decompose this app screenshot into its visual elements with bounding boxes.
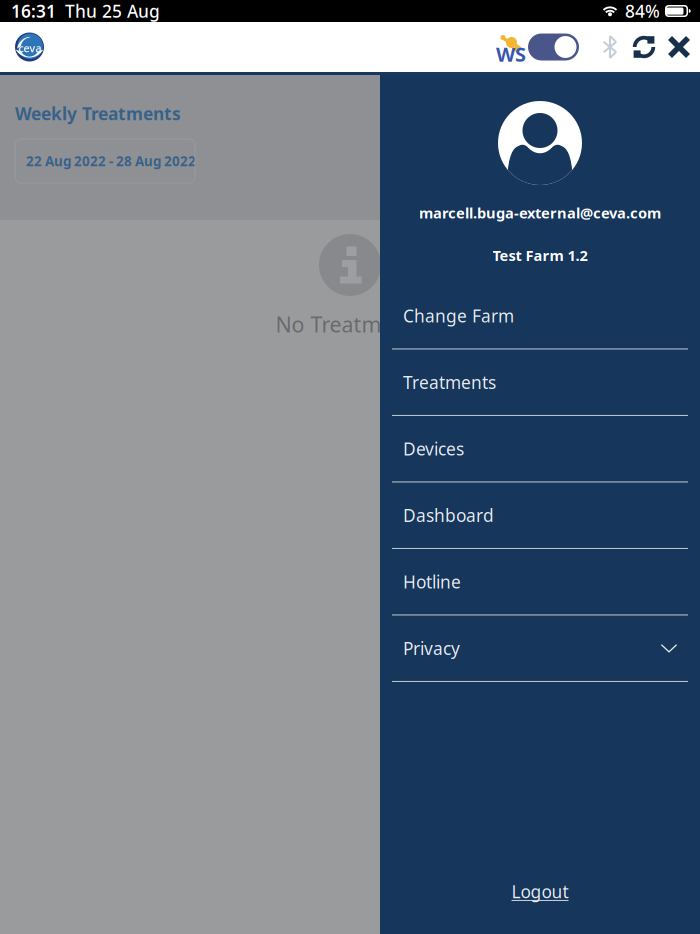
button[interactable]: Hotline: [392, 549, 688, 615]
staticText: WS: [496, 41, 526, 67]
staticText: Dashboard: [403, 504, 494, 527]
button[interactable]: Dashboard: [392, 482, 688, 549]
staticText: 22 Aug 2022 - 28 Aug 2022: [26, 152, 196, 170]
button[interactable]: Close: [665, 32, 693, 62]
button[interactable]: Change Farm: [392, 283, 688, 349]
button[interactable]: Weighing scale: [500, 27, 579, 67]
staticText: Hotline: [403, 570, 461, 593]
button[interactable]: Treatments: [392, 349, 688, 416]
staticText: Thu 25 Aug: [65, 0, 160, 22]
button[interactable]: Logout: [505, 874, 574, 909]
button[interactable]: Bluetooth: [598, 32, 622, 62]
staticText: Devices: [403, 437, 464, 460]
staticText: Privacy: [403, 637, 460, 660]
button[interactable]: Devices: [392, 416, 688, 482]
staticText: 84%: [625, 0, 660, 22]
staticText: marcell.buga-external@ceva.com: [419, 203, 661, 222]
button[interactable]: Refresh: [630, 32, 658, 62]
staticText: No Treatments: [275, 310, 424, 338]
button[interactable]: Privacy: [392, 615, 688, 682]
staticText: ceva: [18, 41, 41, 55]
staticText: Weekly Treatments: [15, 102, 181, 125]
staticText: 16:31: [11, 0, 56, 22]
staticText: Test Farm 1.2: [492, 245, 587, 265]
staticText: Treatments: [403, 371, 496, 394]
staticText: Logout: [511, 880, 568, 903]
button[interactable]: 22 Aug 2022 - 28 Aug 2022: [15, 139, 195, 183]
staticText: Change Farm: [403, 304, 514, 327]
